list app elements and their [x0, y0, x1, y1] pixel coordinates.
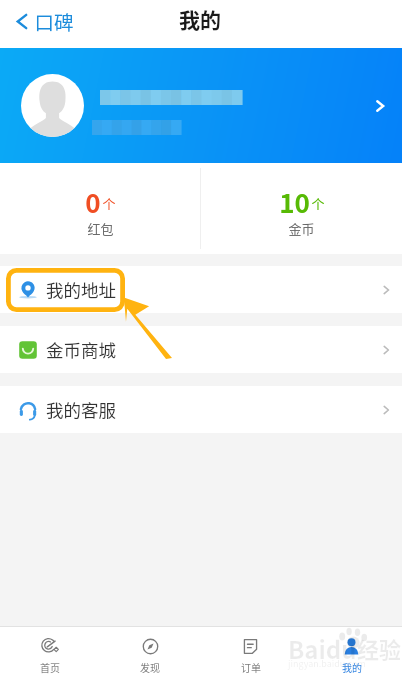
staticText: 10 [279, 183, 310, 221]
staticText: Baidu [288, 631, 357, 666]
staticText: 我的客服 [46, 397, 116, 422]
button[interactable]: 首页 [0, 627, 100, 679]
staticText: 我的 [342, 660, 362, 674]
staticText: 经验 [357, 632, 402, 664]
staticText: 订单 [241, 660, 261, 674]
staticText: 首页 [40, 660, 60, 674]
button[interactable]: Profile details [0, 48, 402, 163]
staticText: jingyan.baidu.com [288, 657, 366, 670]
button[interactable]: 0 [0, 163, 200, 254]
staticText: 口碑 [34, 7, 74, 35]
staticText: 红包 [87, 219, 114, 238]
button[interactable]: 发现 [100, 627, 200, 679]
staticText: 0 [85, 183, 101, 221]
staticText: 个 [311, 194, 325, 213]
staticText: 金币商城 [46, 337, 116, 362]
button[interactable]: 口碑 [10, 3, 78, 39]
other: Profile details [372, 98, 388, 114]
staticText: 发现 [140, 660, 160, 674]
button[interactable]: 我的地址 [0, 266, 402, 313]
staticText: 我的地址 [46, 277, 116, 302]
button[interactable]: 我的客服 [0, 386, 402, 433]
button[interactable]: 我的 [301, 627, 402, 679]
staticText: 金币 [288, 219, 315, 238]
staticText: 我的 [179, 4, 221, 34]
button[interactable]: 10 [201, 163, 402, 254]
button[interactable]: 金币商城 [0, 326, 402, 373]
button[interactable]: 订单 [200, 627, 301, 679]
staticText: 个 [102, 194, 116, 213]
